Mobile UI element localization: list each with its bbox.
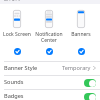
staticText: Badges	[4, 92, 24, 100]
staticText: Lock Screen	[3, 31, 31, 38]
staticText: Notification Center	[35, 31, 63, 44]
staticText: Sounds	[4, 78, 24, 86]
button[interactable]: Lock Screen	[1, 0, 33, 62]
other: Banners	[78, 48, 85, 55]
staticText: ALERTS	[4, 0, 20, 1]
staticText: Banner Style	[4, 64, 38, 72]
button[interactable]: Notification Center	[33, 0, 65, 62]
staticText: Banners	[71, 31, 91, 38]
button[interactable]: Sounds	[0, 76, 100, 89]
button[interactable]: Badges	[0, 90, 100, 100]
button[interactable]: Banners	[65, 0, 97, 62]
staticText: Temporary	[62, 64, 91, 72]
other: Notification Center	[46, 48, 53, 55]
button[interactable]: Banner Style	[0, 62, 100, 75]
other: Lock Screen	[14, 48, 21, 55]
